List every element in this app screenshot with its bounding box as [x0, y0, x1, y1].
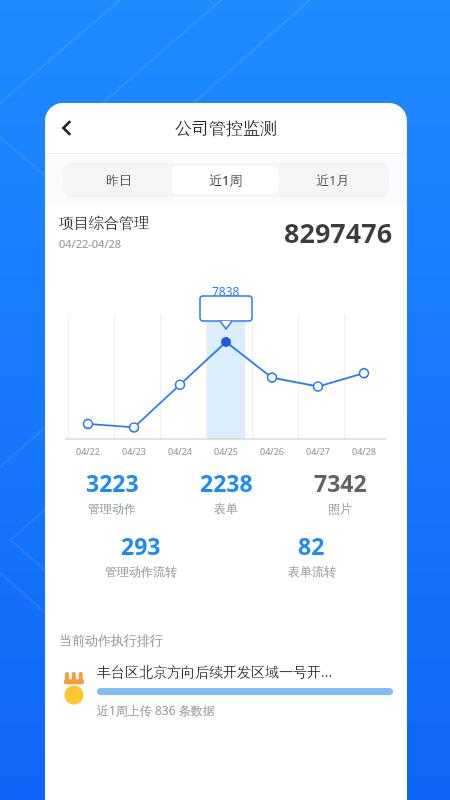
staticText: 04/27 [306, 445, 330, 457]
staticText: 照片 [328, 501, 352, 516]
staticText: 7342 [314, 467, 367, 498]
staticText: 近1周上传 836 条数据 [97, 702, 215, 718]
button[interactable]: 丰台区北京方向后续开发区域一号开... [45, 662, 407, 718]
button[interactable]: 昨日 [66, 166, 172, 194]
button[interactable]: 近1周 [172, 166, 279, 194]
staticText: 8297476 [284, 214, 393, 251]
staticText: 项目综合管理 [59, 214, 149, 233]
staticText: 04/25 [214, 445, 238, 457]
staticText: 04/26 [260, 445, 284, 457]
staticText: 2238 [200, 467, 253, 498]
staticText: 丰台区北京方向后续开发区域一号开... [97, 662, 333, 681]
staticText: 管理动作 [88, 501, 136, 516]
staticText: 293 [121, 530, 161, 561]
staticText: 表单流转 [288, 564, 336, 579]
staticText: 管理动作流转 [105, 564, 177, 579]
staticText: 公司管控监测 [175, 118, 277, 139]
staticText: 表单 [214, 501, 238, 516]
staticText: 近1周 [209, 171, 243, 189]
button[interactable]: Back [45, 106, 89, 150]
staticText: 04/22 [76, 445, 100, 457]
staticText: 04/23 [122, 445, 146, 457]
button[interactable]: 近1月 [279, 166, 386, 194]
staticText: 82 [298, 530, 325, 561]
staticText: 04/22-04/28 [59, 236, 122, 251]
staticText: 昨日 [106, 172, 132, 188]
staticText: 3223 [86, 467, 139, 498]
staticText: 近1月 [316, 171, 350, 189]
staticText: 7838 [212, 283, 240, 299]
staticText: 当前动作执行排行 [59, 632, 163, 648]
staticText: 04/28 [352, 445, 376, 457]
staticText: 04/24 [168, 445, 192, 457]
